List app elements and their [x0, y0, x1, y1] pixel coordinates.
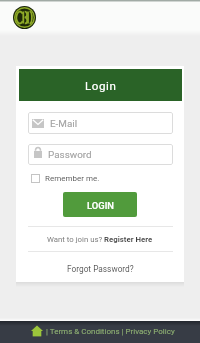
button[interactable]: Password [28, 144, 173, 165]
button[interactable]: Home [31, 325, 43, 337]
staticText: Want to join us? Register Here [47, 235, 153, 244]
staticText: E-Mail [50, 118, 78, 130]
button[interactable]: Want to join us? Register Here [16, 227, 184, 251]
staticText: Forgot Password? [67, 264, 134, 274]
button[interactable]: LOGIN [63, 192, 137, 217]
button[interactable]: E-Mail [28, 112, 173, 134]
staticText: Password [48, 149, 92, 161]
button[interactable]: App logo, home [13, 6, 36, 29]
button[interactable]: Remember me. [31, 172, 100, 185]
staticText: Remember me. [45, 174, 100, 183]
button[interactable]: Forgot Password? [16, 252, 184, 283]
staticText: Login [85, 79, 117, 93]
staticText: LOGIN [87, 200, 114, 211]
staticText: | Terms & Conditions | Privacy Policy [46, 327, 175, 336]
